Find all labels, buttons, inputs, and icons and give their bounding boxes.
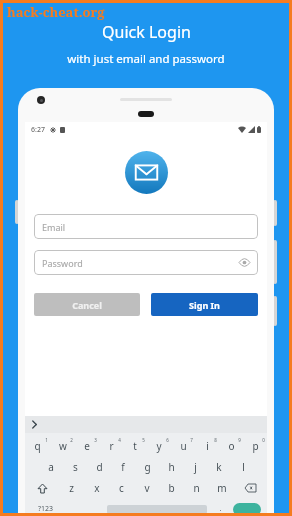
button[interactable]: m: [209, 480, 234, 496]
button[interactable]: p: [243, 437, 267, 454]
staticText: 0: [262, 437, 265, 443]
button[interactable]: ?123: [29, 504, 62, 514]
staticText: Cancel: [72, 299, 102, 311]
button[interactable]: Enter: [233, 503, 261, 516]
button[interactable]: w: [50, 437, 75, 454]
staticText: n: [193, 481, 200, 495]
staticText: Password: [42, 257, 83, 269]
button[interactable]: Password: [34, 250, 258, 275]
staticText: q: [34, 439, 41, 453]
button[interactable]: u: [171, 437, 195, 454]
button[interactable]: Expand toolbar: [29, 419, 40, 430]
staticText: Quick Login: [102, 21, 191, 43]
staticText: 9: [238, 437, 241, 443]
staticText: e: [84, 439, 90, 453]
staticText: r: [109, 439, 114, 453]
button[interactable]: Emoji: [62, 505, 83, 514]
staticText: hack-cheat.org: [7, 3, 105, 21]
button[interactable]: d: [87, 459, 111, 475]
button[interactable]: Email: [34, 214, 258, 239]
button[interactable]: v: [134, 480, 159, 496]
button[interactable]: r: [99, 437, 123, 454]
staticText: w: [59, 439, 67, 453]
button[interactable]: z: [59, 480, 84, 496]
button[interactable]: .: [210, 504, 231, 514]
staticText: 7: [190, 437, 193, 443]
button[interactable]: Voice input: [83, 505, 104, 514]
button[interactable]: q: [25, 437, 50, 454]
button[interactable]: t: [123, 437, 147, 454]
staticText: t: [133, 439, 137, 453]
staticText: 8: [214, 437, 217, 443]
button[interactable]: j: [183, 459, 207, 475]
button[interactable]: y: [147, 437, 171, 454]
staticText: j: [194, 460, 197, 474]
button[interactable]: g: [135, 459, 159, 475]
staticText: with just email and password: [67, 51, 225, 67]
button[interactable]: Sign In: [151, 293, 258, 316]
staticText: 6:27: [31, 125, 45, 135]
staticText: p: [252, 439, 259, 453]
button[interactable]: l: [231, 459, 255, 475]
button[interactable]: Cancel: [34, 293, 140, 316]
staticText: l: [242, 460, 245, 474]
staticText: z: [69, 481, 74, 495]
button[interactable]: Space: [107, 505, 207, 514]
staticText: u: [180, 439, 187, 453]
staticText: v: [144, 481, 150, 495]
staticText: 4: [118, 437, 121, 443]
button[interactable]: Show password: [239, 257, 250, 268]
button[interactable]: n: [184, 480, 209, 496]
staticText: Email: [42, 221, 66, 233]
button[interactable]: a: [38, 459, 63, 475]
staticText: a: [48, 460, 54, 474]
staticText: 2: [70, 437, 73, 443]
staticText: Sign In: [189, 299, 220, 311]
button[interactable]: s: [63, 459, 87, 475]
button[interactable]: Shift: [25, 480, 59, 496]
staticText: x: [94, 481, 100, 495]
staticText: s: [73, 460, 78, 474]
staticText: 3: [94, 437, 97, 443]
button[interactable]: f: [111, 459, 135, 475]
staticText: b: [168, 481, 175, 495]
staticText: g: [144, 460, 151, 474]
button[interactable]: h: [159, 459, 183, 475]
button[interactable]: i: [195, 437, 219, 454]
button[interactable]: k: [207, 459, 231, 475]
staticText: i: [206, 439, 209, 453]
staticText: 6: [166, 437, 169, 443]
staticText: c: [119, 481, 124, 495]
staticText: h: [168, 460, 175, 474]
staticText: y: [156, 439, 162, 453]
button[interactable]: e: [75, 437, 99, 454]
staticText: k: [216, 460, 222, 474]
staticText: d: [96, 460, 103, 474]
button[interactable]: c: [109, 480, 134, 496]
staticText: o: [228, 439, 235, 453]
staticText: 1: [45, 437, 48, 443]
staticText: 5: [142, 437, 145, 443]
button[interactable]: o: [219, 437, 243, 454]
staticText: f: [121, 460, 125, 474]
button[interactable]: b: [159, 480, 184, 496]
button[interactable]: x: [84, 480, 109, 496]
button[interactable]: Backspace: [234, 480, 267, 496]
staticText: m: [217, 481, 227, 495]
